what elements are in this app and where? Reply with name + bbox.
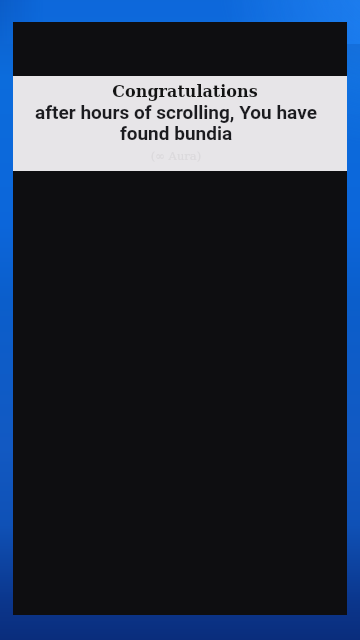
staticText: found bundia (9, 122, 343, 144)
staticText: Congratulations (18, 82, 352, 101)
button[interactable]: Congratulations (13, 76, 347, 171)
staticText: (∞ Aura) (9, 149, 343, 162)
other: Congratulations screenshot (13, 22, 347, 615)
staticText: after hours of scrolling, You have (9, 101, 343, 123)
